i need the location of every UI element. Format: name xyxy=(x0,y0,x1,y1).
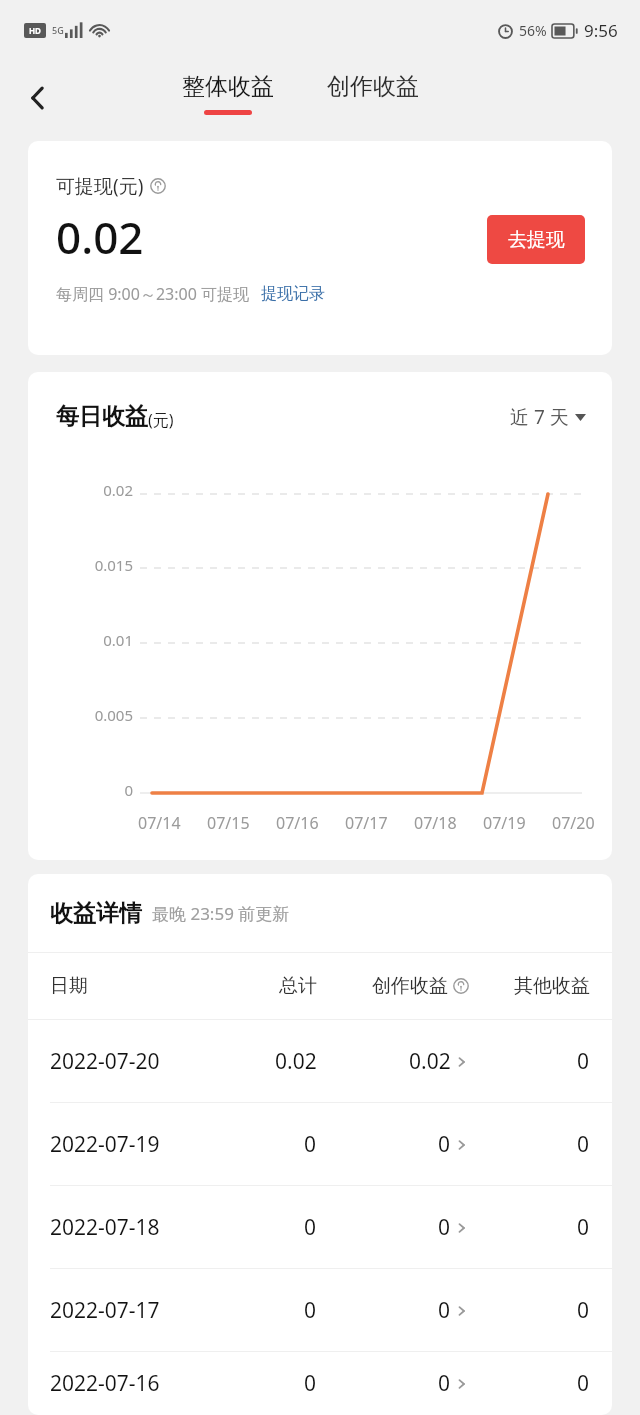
staticText: 0 xyxy=(124,780,133,800)
staticText: 0 xyxy=(577,1213,590,1242)
staticText: 日期 xyxy=(50,974,214,998)
staticText: 创作收益 xyxy=(372,974,448,998)
staticText: 0.01 xyxy=(103,630,133,650)
button[interactable]: 提现记录 xyxy=(261,284,325,304)
staticText: 2022-07-20 xyxy=(50,1047,214,1076)
staticText: 0 xyxy=(438,1213,451,1242)
staticText: 0.015 xyxy=(94,555,133,575)
button[interactable]: 整体收益 xyxy=(182,72,274,115)
button[interactable]: Back xyxy=(14,74,62,122)
staticText: 创作收益 xyxy=(327,72,419,101)
staticText: 其他收益 xyxy=(514,974,590,998)
staticText: 0 xyxy=(577,1047,590,1076)
staticText: 0 xyxy=(577,1296,590,1325)
staticText: 0.02 xyxy=(275,1047,317,1076)
staticText: 0 xyxy=(577,1369,590,1398)
staticText: 提现记录 xyxy=(261,284,325,304)
staticText: 整体收益 xyxy=(182,72,274,101)
staticText: (元) xyxy=(148,409,174,431)
staticText: 2022-07-19 xyxy=(50,1130,214,1159)
staticText: 0 xyxy=(438,1369,451,1398)
staticText: 2022-07-18 xyxy=(50,1213,214,1242)
staticText: 0 xyxy=(304,1130,317,1159)
staticText: 07/14 xyxy=(138,812,181,834)
staticText: 07/15 xyxy=(207,812,250,834)
button[interactable]: 2022-07-17 xyxy=(28,1269,612,1351)
staticText: 近 7 天 xyxy=(510,404,569,430)
staticText: 每周四 9:00～23:00 可提现 xyxy=(56,283,249,305)
staticText: 0 xyxy=(304,1213,317,1242)
staticText: 56% xyxy=(519,21,547,40)
button[interactable]: 去提现 xyxy=(487,215,585,264)
staticText: 9:56 xyxy=(584,19,618,42)
staticText: 0.02 xyxy=(56,207,144,267)
staticText: 07/17 xyxy=(345,812,388,834)
button[interactable]: 2022-07-19 xyxy=(28,1103,612,1185)
staticText: 0 xyxy=(438,1130,451,1159)
button[interactable]: 2022-07-20 xyxy=(28,1020,612,1102)
staticText: 0 xyxy=(304,1369,317,1398)
staticText: 0.02 xyxy=(103,480,133,500)
button[interactable]: 2022-07-18 xyxy=(28,1186,612,1268)
staticText: 2022-07-17 xyxy=(50,1296,214,1325)
staticText: 0.005 xyxy=(94,705,133,725)
staticText: 07/16 xyxy=(276,812,319,834)
staticText: 总计 xyxy=(279,974,317,998)
staticText: 07/18 xyxy=(414,812,457,834)
staticText: 每日收益 xyxy=(56,402,148,431)
staticText: 0 xyxy=(577,1130,590,1159)
staticText: 去提现 xyxy=(508,228,565,252)
staticText: 07/20 xyxy=(552,812,595,834)
staticText: 0.02 xyxy=(409,1047,451,1076)
staticText: HD xyxy=(29,25,41,36)
staticText: 0 xyxy=(304,1296,317,1325)
button[interactable]: 创作收益 xyxy=(327,72,419,101)
button[interactable]: 2022-07-16 xyxy=(28,1352,612,1415)
staticText: 0 xyxy=(438,1296,451,1325)
staticText: 可提现(元) xyxy=(56,173,144,199)
button[interactable]: 近 7 天 xyxy=(510,404,586,430)
staticText: 最晚 23:59 前更新 xyxy=(152,902,290,925)
staticText: 07/19 xyxy=(483,812,526,834)
staticText: 5G xyxy=(52,24,64,36)
staticText: 2022-07-16 xyxy=(50,1369,214,1398)
staticText: 收益详情 xyxy=(50,899,142,928)
